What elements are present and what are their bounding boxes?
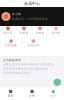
staticText: 订单 [29, 94, 35, 97]
staticText: 待发货 [19, 31, 28, 34]
staticText: 普通会员 · 立即升级享权益 [12, 17, 48, 21]
button[interactable]: 待付款 [0, 27, 16, 34]
staticText: 我的收藏 [5, 44, 17, 47]
staticText: 首页 [8, 94, 14, 97]
button[interactable]: 浏览记录 [22, 39, 44, 47]
staticText: 开通会员后可享受专属折扣与优先配送 [3, 63, 54, 66]
button[interactable]: 我的收藏 [0, 39, 22, 47]
staticText: 会员权益说明 [3, 58, 21, 62]
staticText: 待收货 [35, 31, 44, 34]
staticText: 待付款 [3, 31, 12, 34]
staticText: 浏览记录 [27, 44, 39, 47]
staticText: 待评价 [51, 31, 60, 34]
button[interactable]: 待评价 [48, 27, 64, 34]
button[interactable]: 待收货 [32, 27, 48, 34]
button[interactable]: 首页 [0, 90, 21, 97]
button[interactable]: Compose [53, 78, 61, 86]
button[interactable]: 我的 [43, 90, 64, 97]
button[interactable]: 待发货 [16, 27, 32, 34]
staticText: 张小明 [12, 12, 21, 16]
button[interactable]: 订单 [21, 90, 43, 97]
staticText: 详情请查看会员协议 [3, 71, 30, 75]
staticText: 每月赠送优惠券若干张可叠加使用 [3, 67, 48, 70]
staticText: 我的 [50, 94, 56, 97]
staticText: 会员中心 [24, 1, 40, 6]
